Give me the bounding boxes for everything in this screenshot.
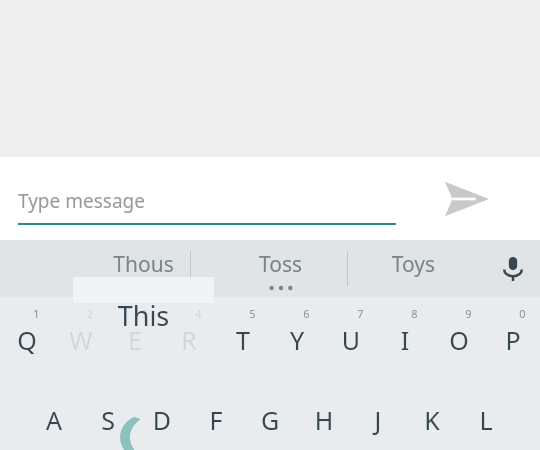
staticText: 0 <box>519 306 526 321</box>
staticText: P <box>486 323 540 357</box>
button[interactable]: K <box>405 378 459 450</box>
button[interactable]: G <box>243 378 297 450</box>
staticText: O <box>432 323 486 357</box>
staticText: R <box>162 323 216 357</box>
staticText: Toss <box>214 250 347 279</box>
button[interactable]: Thous <box>73 240 214 297</box>
staticText: A <box>27 403 81 437</box>
staticText: Y <box>270 323 324 357</box>
button[interactable]: 8 <box>378 297 432 373</box>
button[interactable]: Voice input <box>486 240 540 297</box>
staticText: Type message <box>18 188 145 214</box>
button[interactable]: L <box>459 378 513 450</box>
staticText: I <box>378 323 432 357</box>
staticText: 2 <box>87 306 94 321</box>
button[interactable]: 5 <box>216 297 270 373</box>
staticText: 9 <box>465 306 472 321</box>
button[interactable]: 3 <box>108 297 162 373</box>
staticText: Toys <box>347 250 480 279</box>
staticText: K <box>405 403 459 437</box>
button[interactable]: 7 <box>324 297 378 373</box>
staticText: This <box>73 297 214 334</box>
staticText: S <box>81 403 135 437</box>
button[interactable]: A <box>27 378 81 450</box>
button[interactable]: 4 <box>162 297 216 373</box>
button[interactable]: 9 <box>432 297 486 373</box>
staticText: G <box>243 403 297 437</box>
button[interactable]: D <box>135 378 189 450</box>
staticText: L <box>459 403 513 437</box>
button[interactable]: F <box>189 378 243 450</box>
button[interactable]: 1 <box>0 297 54 373</box>
staticText: E <box>108 323 162 357</box>
button[interactable]: H <box>297 378 351 450</box>
staticText: 1 <box>33 306 40 321</box>
button[interactable]: 6 <box>270 297 324 373</box>
button[interactable]: Toys <box>347 240 480 297</box>
staticText: 5 <box>249 306 256 321</box>
staticText: 3 <box>141 306 148 321</box>
staticText: J <box>351 403 405 437</box>
button[interactable]: S <box>81 378 135 450</box>
staticText: T <box>216 323 270 357</box>
staticText: H <box>297 403 351 437</box>
button[interactable]: J <box>351 378 405 450</box>
staticText: F <box>189 403 243 437</box>
staticText: 8 <box>411 306 418 321</box>
button[interactable]: 0 <box>486 297 540 373</box>
staticText: W <box>54 323 108 357</box>
button[interactable]: Send <box>432 165 500 233</box>
staticText: Thous <box>73 250 214 279</box>
button[interactable]: Type message <box>18 175 396 225</box>
staticText: Q <box>0 323 54 357</box>
staticText: 4 <box>195 306 202 321</box>
staticText: D <box>135 403 189 437</box>
button[interactable]: 2 <box>54 297 108 373</box>
staticText: U <box>324 323 378 357</box>
staticText: 6 <box>303 306 310 321</box>
staticText: 7 <box>357 306 364 321</box>
button[interactable]: Toss <box>214 240 347 297</box>
